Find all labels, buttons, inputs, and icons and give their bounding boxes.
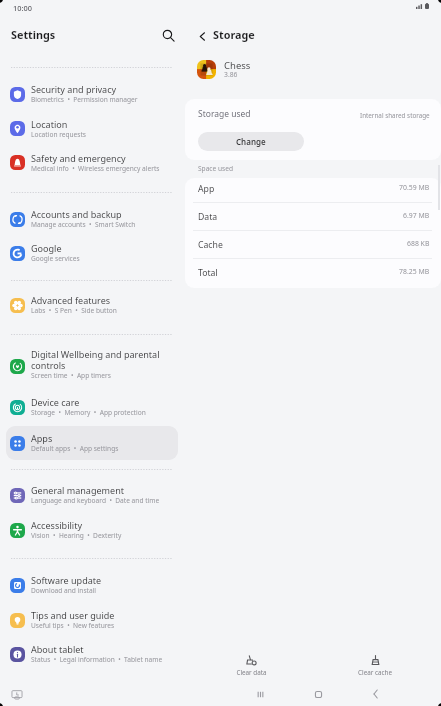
staticText: 10:00 xyxy=(13,3,32,13)
staticText: Status • Legal information • Tablet name xyxy=(31,655,163,664)
button[interactable] xyxy=(6,426,178,460)
button[interactable]: Change xyxy=(198,132,304,151)
staticText: Clear cache xyxy=(358,668,392,677)
staticText: Storage used xyxy=(198,108,251,120)
button[interactable] xyxy=(6,568,178,602)
staticText: Tips and user guide xyxy=(31,609,115,621)
staticText: Internal shared storage xyxy=(360,111,430,120)
button[interactable]: Home xyxy=(306,682,330,706)
button[interactable] xyxy=(185,258,441,287)
staticText: Safety and emergency xyxy=(31,152,126,164)
staticText: Language and keyboard • Date and time xyxy=(31,496,160,505)
button[interactable] xyxy=(6,478,178,512)
button[interactable] xyxy=(6,637,178,671)
staticText: Storage xyxy=(213,27,255,42)
staticText: 3.86 xyxy=(224,70,238,79)
button[interactable] xyxy=(6,236,178,270)
staticText: Manage accounts • Smart Switch xyxy=(31,220,136,229)
button[interactable] xyxy=(6,146,178,180)
staticText: Medical info • Wireless emergency alerts xyxy=(31,164,160,173)
staticText: About tablet xyxy=(31,643,84,655)
button[interactable] xyxy=(6,288,178,322)
staticText: Location requests xyxy=(31,130,87,139)
button[interactable] xyxy=(185,202,441,230)
staticText: Total xyxy=(198,267,218,279)
button[interactable] xyxy=(185,178,441,203)
button[interactable] xyxy=(6,513,178,547)
staticText: Google xyxy=(31,242,62,254)
staticText: Biometrics • Permission manager xyxy=(31,95,138,104)
staticText: Accounts and backup xyxy=(31,208,122,220)
staticText: Cache xyxy=(198,239,223,251)
staticText: Useful tips • New features xyxy=(31,621,115,630)
button[interactable] xyxy=(185,230,441,258)
button[interactable] xyxy=(6,603,178,637)
staticText: Apps xyxy=(31,432,53,444)
staticText: 78.25 MB xyxy=(399,267,430,276)
staticText: Device care xyxy=(31,396,80,408)
staticText: Google services xyxy=(31,254,80,263)
staticText: Vision • Hearing • Dexterity xyxy=(31,531,122,540)
button[interactable] xyxy=(6,77,178,111)
staticText: Chess xyxy=(224,59,251,72)
button[interactable] xyxy=(6,390,178,424)
button[interactable] xyxy=(6,349,178,383)
staticText: Digital Wellbeing and parental xyxy=(31,348,160,360)
button[interactable]: Search xyxy=(157,24,179,46)
staticText: Security and privacy xyxy=(31,83,117,95)
staticText: General management xyxy=(31,484,124,496)
staticText: Data xyxy=(198,211,218,223)
staticText: Settings xyxy=(11,27,56,42)
button[interactable]: Recents xyxy=(248,682,272,706)
staticText: 688 KB xyxy=(407,239,430,248)
staticText: 6.97 MB xyxy=(403,211,430,220)
staticText: Default apps • App settings xyxy=(31,444,119,453)
staticText: Location xyxy=(31,118,68,130)
button[interactable]: Hide keyboard xyxy=(7,685,27,705)
staticText: Change xyxy=(236,136,266,147)
staticText: Storage • Memory • App protection xyxy=(31,408,146,417)
button[interactable]: Clear cache xyxy=(340,655,410,685)
button[interactable] xyxy=(6,202,178,236)
staticText: Screen time • App timers xyxy=(31,371,111,380)
staticText: App xyxy=(198,183,215,195)
staticText: Clear data xyxy=(236,668,267,677)
staticText: Space used xyxy=(198,164,233,173)
button[interactable]: Clear data xyxy=(216,655,286,685)
staticText: Download and install xyxy=(31,586,97,595)
staticText: 70.59 MB xyxy=(399,183,430,192)
button[interactable]: Back xyxy=(192,26,212,46)
staticText: controls xyxy=(31,359,66,371)
staticText: Advanced features xyxy=(31,294,111,306)
staticText: Software update xyxy=(31,574,102,586)
button[interactable] xyxy=(6,112,178,146)
staticText: Accessibility xyxy=(31,519,83,531)
button[interactable]: Back xyxy=(364,682,388,706)
staticText: Labs • S Pen • Side button xyxy=(31,306,117,315)
